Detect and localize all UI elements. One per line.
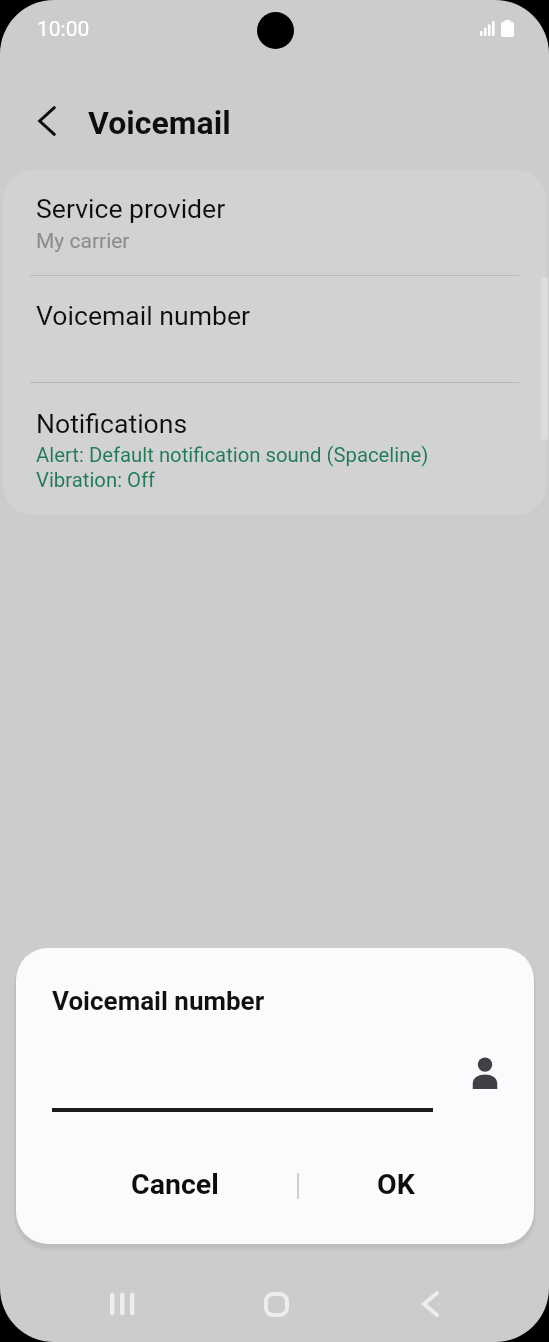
staticText: Cancel	[131, 1168, 219, 1201]
button[interactable]: Service provider	[3, 170, 546, 275]
staticText: Voicemail number	[36, 300, 251, 331]
button[interactable]: Back	[394, 1268, 466, 1340]
button[interactable]: Home	[240, 1268, 312, 1340]
staticText: Alert: Default notification sound (Space…	[36, 443, 429, 467]
staticText: Voicemail number	[52, 986, 265, 1016]
staticText: 10:00	[37, 17, 90, 42]
button[interactable]: Cancel	[16, 1140, 298, 1228]
staticText: Vibration: Off	[36, 468, 156, 492]
button[interactable]: Recent apps	[86, 1268, 158, 1340]
button[interactable]: Choose from contacts	[455, 1043, 515, 1103]
staticText: My carrier	[36, 229, 130, 254]
staticText: OK	[377, 1168, 415, 1201]
staticText: Notifications	[36, 408, 188, 439]
button[interactable]: OK	[298, 1140, 534, 1228]
staticText: Voicemail	[88, 104, 231, 142]
staticText: Service provider	[36, 193, 226, 224]
button[interactable]: Voicemail number	[3, 276, 546, 382]
button[interactable]: Back	[23, 97, 71, 145]
button[interactable]: Notifications	[3, 383, 546, 513]
